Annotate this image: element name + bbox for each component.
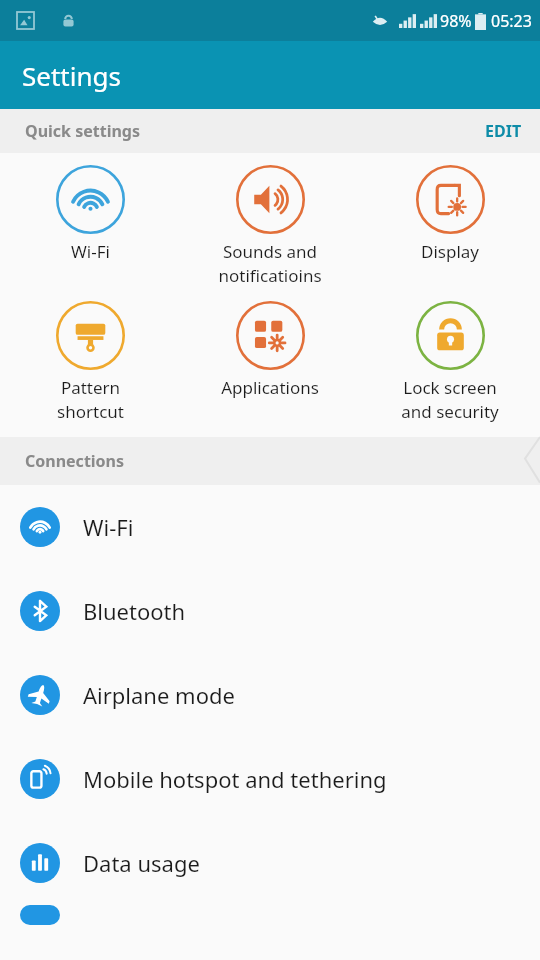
staticText: Airplane mode (83, 680, 235, 710)
staticText: Wi-Fi (71, 240, 110, 263)
staticText: Mobile hotspot and tethering (83, 764, 387, 794)
button[interactable]: Wi-Fi (0, 485, 540, 569)
staticText: EDIT (485, 120, 522, 142)
staticText: Applications (221, 376, 319, 399)
button[interactable]: Data usage (0, 821, 540, 905)
staticText: Pattern shortcut (57, 376, 124, 423)
button[interactable]: Wi-Fi (0, 163, 180, 263)
button[interactable]: Pattern shortcut (0, 299, 180, 423)
staticText: Lock screen and security (401, 376, 499, 423)
staticText: Bluetooth (83, 596, 186, 626)
staticText: 98% (440, 10, 472, 32)
button[interactable]: Display (360, 163, 540, 263)
button[interactable]: Applications (180, 299, 360, 399)
button[interactable]: Airplane mode (0, 653, 540, 737)
button[interactable]: EDIT (467, 112, 540, 150)
button[interactable]: Bluetooth (0, 569, 540, 653)
button[interactable]: Sounds and notificatioins (180, 163, 360, 287)
staticText: Data usage (83, 848, 200, 878)
button[interactable]: Lock screen and security (360, 299, 540, 423)
staticText: Settings (22, 58, 121, 93)
staticText: 05:23 (491, 10, 532, 32)
button[interactable]: Mobile hotspot and tethering (0, 737, 540, 821)
staticText: Connections (25, 450, 125, 472)
staticText: Wi-Fi (83, 512, 134, 542)
staticText: Sounds and notificatioins (218, 240, 322, 287)
staticText: Display (421, 240, 479, 263)
staticText: Quick settings (25, 120, 140, 142)
